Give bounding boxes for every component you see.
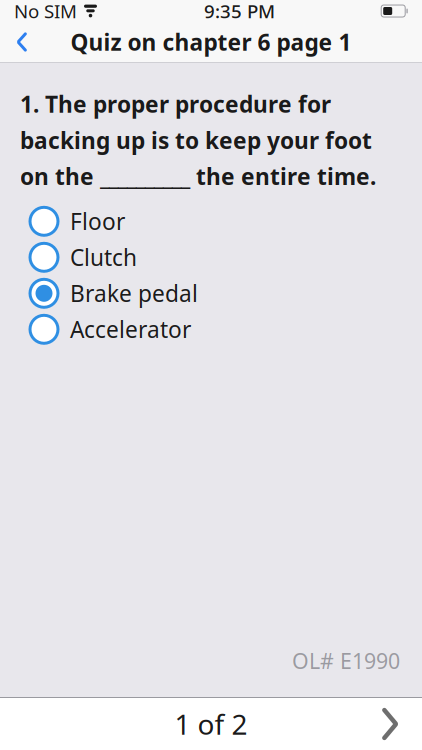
button[interactable]: Accelerator bbox=[0, 311, 422, 347]
button[interactable]: Floor bbox=[0, 203, 422, 239]
staticText: No SIM bbox=[14, 0, 77, 23]
staticText: Clutch bbox=[70, 242, 137, 272]
staticText: Quiz on chapter 6 page 1 bbox=[70, 27, 351, 57]
button[interactable]: Clutch bbox=[0, 239, 422, 275]
staticText: Accelerator bbox=[70, 314, 191, 344]
staticText: 9:35 PM bbox=[204, 0, 275, 23]
button[interactable]: Next page bbox=[358, 698, 422, 750]
button[interactable]: Back bbox=[0, 22, 44, 62]
staticText: 1. The proper procedure for backing up i… bbox=[20, 89, 376, 191]
staticText: Brake pedal bbox=[70, 278, 198, 308]
staticText: OL# E1990 bbox=[292, 647, 400, 675]
staticText: 1 of 2 bbox=[174, 705, 247, 743]
staticText: Floor bbox=[70, 206, 125, 236]
button[interactable]: Brake pedal bbox=[0, 275, 422, 311]
